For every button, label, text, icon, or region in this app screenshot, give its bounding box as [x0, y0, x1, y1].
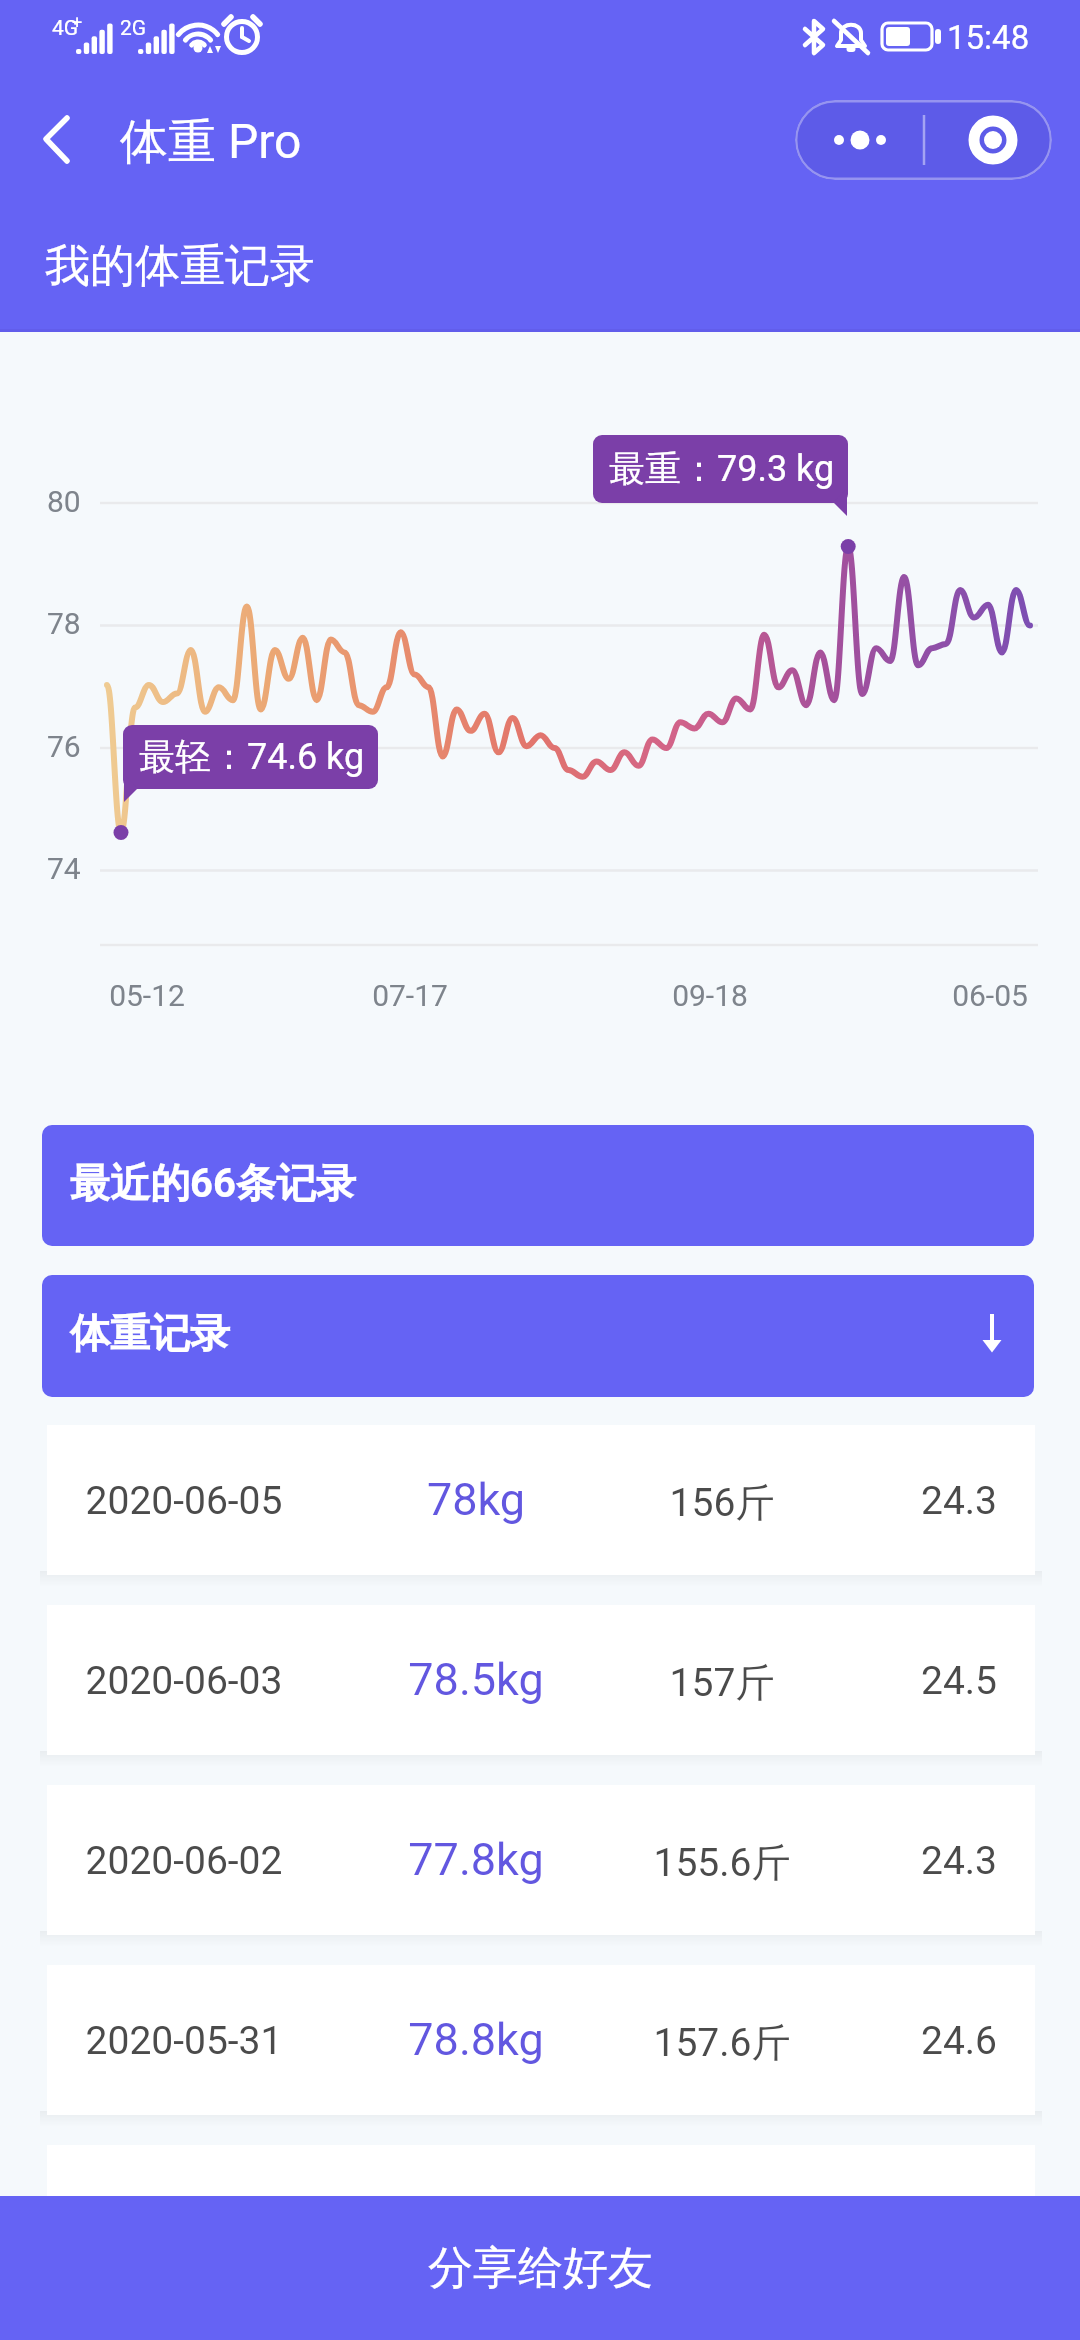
staticText: 2020-06-02: [64, 1838, 304, 1884]
staticText: 最轻：74.6 kg: [139, 734, 365, 779]
staticText: 2G: [120, 16, 147, 41]
staticText: 78.5kg: [356, 1653, 596, 1706]
staticText: 09-18: [640, 978, 780, 1013]
staticText: 2020-05-31: [64, 2018, 304, 2064]
staticText: 74: [47, 851, 81, 886]
staticText: 最重：79.3 kg: [609, 446, 835, 491]
button[interactable]: 2020-06-02: [47, 1785, 1035, 1935]
staticText: 24.6: [839, 2018, 1079, 2064]
staticText: 我的体重记录: [45, 238, 315, 295]
staticText: 2020-06-03: [64, 1658, 304, 1704]
staticText: 24.5: [839, 1658, 1079, 1704]
staticText: 78kg: [356, 1473, 596, 1526]
staticText: 05-12: [77, 978, 217, 1013]
staticText: 78.8kg: [356, 2013, 596, 2066]
staticText: 15:48: [947, 18, 1030, 57]
staticText: 76: [47, 729, 81, 764]
button[interactable]: 2020-06-05: [47, 1425, 1035, 1575]
staticText: 24.3: [839, 1478, 1079, 1524]
staticText: 156斤: [602, 1478, 842, 1527]
staticText: 2020-06-05: [64, 1478, 304, 1524]
staticText: 157斤: [602, 1658, 842, 1707]
staticText: 07-17: [340, 978, 480, 1013]
staticText: 体重记录: [70, 1308, 230, 1358]
staticText: 157.6斤: [602, 2018, 842, 2067]
button[interactable]: 最近的66条记录: [42, 1125, 1034, 1246]
staticText: 4G: [52, 16, 79, 41]
staticText: 24.3: [839, 1838, 1079, 1884]
staticText: 77.8kg: [356, 1833, 596, 1886]
staticText: 78: [47, 606, 81, 641]
staticText: 06-05: [920, 978, 1060, 1013]
staticText: 分享给好友: [428, 2240, 653, 2297]
button[interactable]: 体重记录: [42, 1275, 1034, 1397]
button[interactable]: More options: [795, 100, 1052, 180]
staticText: +: [72, 12, 83, 33]
button[interactable]: 2020-06-03: [47, 1605, 1035, 1755]
staticText: 最近的66条记录: [70, 1158, 356, 1208]
staticText: 80: [47, 484, 81, 519]
button[interactable]: Back: [26, 100, 102, 176]
staticText: 体重 Pro: [120, 112, 302, 172]
staticText: 155.6斤: [602, 1838, 842, 1887]
button[interactable]: 2020-05-31: [47, 1965, 1035, 2115]
button[interactable]: 分享给好友: [0, 2196, 1080, 2340]
